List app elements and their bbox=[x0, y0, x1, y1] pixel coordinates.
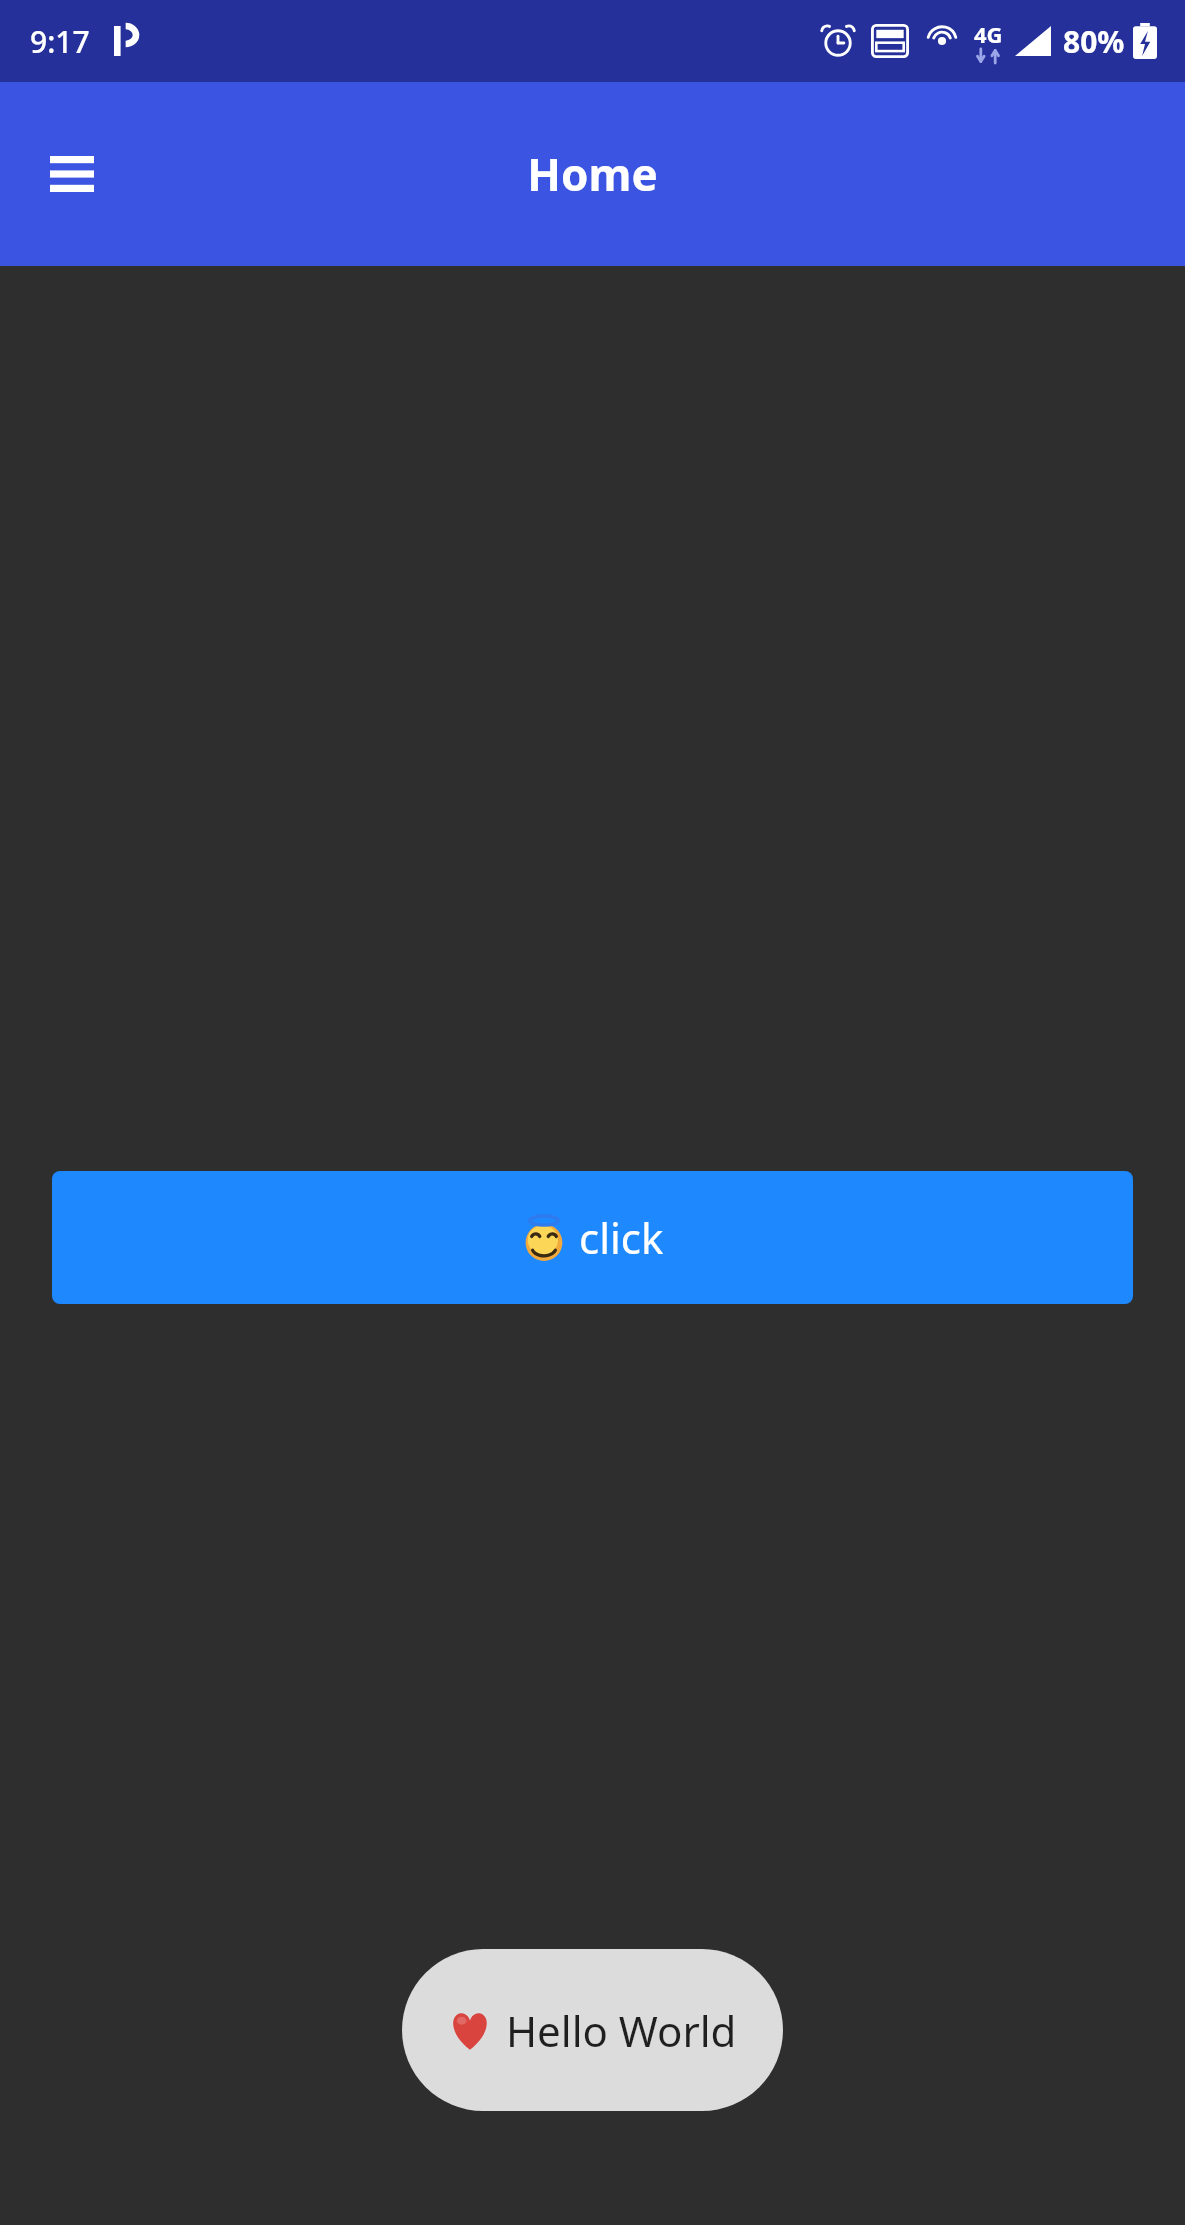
staticText: 80% bbox=[1063, 21, 1125, 62]
staticText: click bbox=[579, 1209, 664, 1266]
staticText: Hello World bbox=[506, 2002, 737, 2059]
staticText: 4G bbox=[974, 19, 1003, 49]
button[interactable]: Open navigation menu bbox=[40, 142, 104, 206]
button[interactable]: Hello World bbox=[448, 1949, 737, 2111]
button[interactable]: click bbox=[52, 1171, 1133, 1304]
staticText: Home bbox=[527, 144, 658, 204]
staticText: 9:17 bbox=[30, 21, 90, 62]
